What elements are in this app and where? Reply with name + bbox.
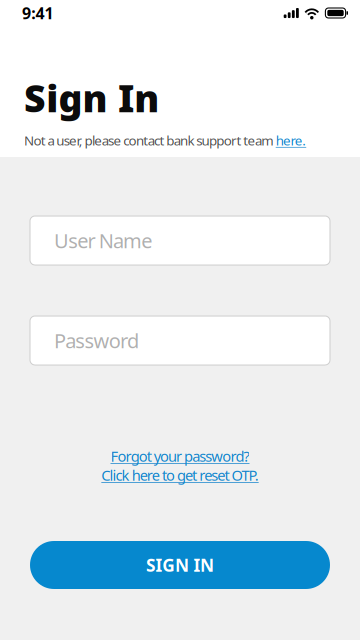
staticText: User Name bbox=[54, 227, 152, 254]
staticText: Not a user, please contact bank support … bbox=[24, 132, 276, 149]
staticText: SIGN IN bbox=[146, 553, 214, 576]
button[interactable]: User Name bbox=[30, 216, 330, 265]
button[interactable]: Forgot your password? bbox=[110, 448, 249, 464]
staticText: Sign In bbox=[24, 73, 159, 123]
button[interactable]: SIGN IN bbox=[30, 541, 330, 589]
staticText: Password bbox=[54, 327, 139, 354]
staticText: Click here to get reset OTP. bbox=[101, 465, 259, 485]
staticText: Forgot your password? bbox=[110, 446, 249, 466]
staticText: 9:41 bbox=[22, 2, 54, 24]
button[interactable]: Click here to get reset OTP. bbox=[101, 467, 259, 483]
button[interactable]: here. bbox=[276, 132, 306, 149]
staticText: here. bbox=[276, 132, 306, 149]
button[interactable]: Password bbox=[30, 316, 330, 365]
